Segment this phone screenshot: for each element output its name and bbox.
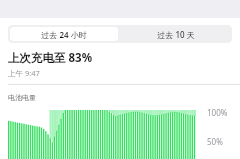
- staticText: 上午 9:47: [8, 68, 40, 78]
- staticText: 过去 24 小时: [41, 29, 87, 40]
- staticText: 100%: [207, 107, 228, 118]
- staticText: 电池电量: [8, 93, 36, 102]
- staticText: 50%: [207, 136, 223, 147]
- button[interactable]: 过去 24 小时: [10, 27, 118, 41]
- button[interactable]: 过去 10 天: [120, 25, 232, 43]
- staticText: 过去 10 天: [157, 29, 195, 40]
- staticText: 上次充电至 83%: [8, 50, 93, 66]
